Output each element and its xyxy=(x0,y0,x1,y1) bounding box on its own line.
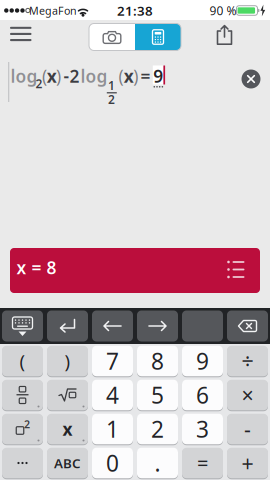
staticText: 90 % xyxy=(209,2,236,18)
staticText: - xyxy=(63,64,69,87)
button[interactable]: = xyxy=(182,447,223,479)
staticText: ) xyxy=(64,349,70,373)
staticText: x xyxy=(124,64,134,87)
staticText: 0 xyxy=(106,448,119,478)
staticText: ÷ xyxy=(241,347,253,375)
staticText: 1 xyxy=(106,414,119,444)
button[interactable]: ) xyxy=(47,345,88,377)
staticText: x xyxy=(62,417,72,440)
button[interactable]: + xyxy=(227,447,268,479)
button[interactable]: More xyxy=(2,447,43,479)
staticText: 2 xyxy=(35,75,42,91)
staticText: log xyxy=(80,64,107,87)
button[interactable]: Move cursor right xyxy=(137,310,178,342)
button[interactable]: ( xyxy=(2,345,43,377)
staticText: . xyxy=(154,448,160,478)
button[interactable]: Calculator xyxy=(135,23,181,50)
button[interactable]: 0 xyxy=(92,447,133,479)
button[interactable]: 3 xyxy=(182,413,223,445)
button[interactable]: Menu xyxy=(10,20,31,48)
button[interactable]: 9 xyxy=(182,345,223,377)
staticText: ) xyxy=(133,64,138,87)
staticText: x = 8 xyxy=(16,256,56,279)
staticText: = xyxy=(140,64,150,87)
button[interactable]: 1 xyxy=(92,413,133,445)
staticText: MegaFon xyxy=(29,3,77,18)
staticText: 9 xyxy=(153,64,163,87)
staticText: 2 xyxy=(108,91,115,107)
button[interactable]: Fraction xyxy=(2,379,43,411)
button[interactable]: Square root xyxy=(47,379,88,411)
button[interactable]: Delete xyxy=(227,310,268,342)
button[interactable]: 4 xyxy=(92,379,133,411)
button[interactable]: Hide keyboard xyxy=(2,310,43,342)
staticText: 1 xyxy=(108,77,115,93)
staticText: - xyxy=(244,415,251,443)
staticText: log xyxy=(10,64,37,87)
button[interactable]: Camera xyxy=(89,23,135,50)
staticText: ( xyxy=(19,349,25,373)
staticText: ) xyxy=(56,64,61,87)
button[interactable]: ABC xyxy=(47,447,88,479)
staticText: × xyxy=(241,381,253,409)
button[interactable]: 2 xyxy=(137,413,178,445)
button[interactable]: 6 xyxy=(182,379,223,411)
button[interactable]: x = 8 xyxy=(10,248,260,293)
staticText: 3 xyxy=(196,414,209,444)
staticText: x xyxy=(47,64,57,87)
staticText: 4 xyxy=(106,380,119,410)
button[interactable]: . xyxy=(137,447,178,479)
staticText: ABC xyxy=(54,454,81,472)
button[interactable]: New line xyxy=(47,310,88,342)
staticText: 2 xyxy=(151,414,164,444)
staticText: 2 xyxy=(24,417,30,431)
button[interactable]: Move cursor left xyxy=(92,310,133,342)
button[interactable]: Power xyxy=(2,413,43,445)
button[interactable]: x xyxy=(47,413,88,445)
staticText: = xyxy=(197,450,208,476)
button[interactable]: ÷ xyxy=(227,345,268,377)
staticText: ( xyxy=(42,64,47,87)
staticText: 7 xyxy=(106,346,119,376)
staticText: 9 xyxy=(196,346,209,376)
button[interactable]: × xyxy=(227,379,268,411)
staticText: ( xyxy=(118,64,123,87)
button[interactable]: Clear xyxy=(241,69,260,88)
staticText: 6 xyxy=(196,380,209,410)
staticText: 8 xyxy=(151,346,164,376)
staticText: 5 xyxy=(151,380,164,410)
button[interactable]: Share xyxy=(217,25,232,45)
staticText: 21:38 xyxy=(117,2,153,19)
button[interactable]: 8 xyxy=(137,345,178,377)
staticText: 2 xyxy=(69,64,79,87)
button[interactable]: 7 xyxy=(92,345,133,377)
staticText: + xyxy=(241,449,253,477)
button[interactable]: 5 xyxy=(137,379,178,411)
button[interactable]: - xyxy=(227,413,268,445)
